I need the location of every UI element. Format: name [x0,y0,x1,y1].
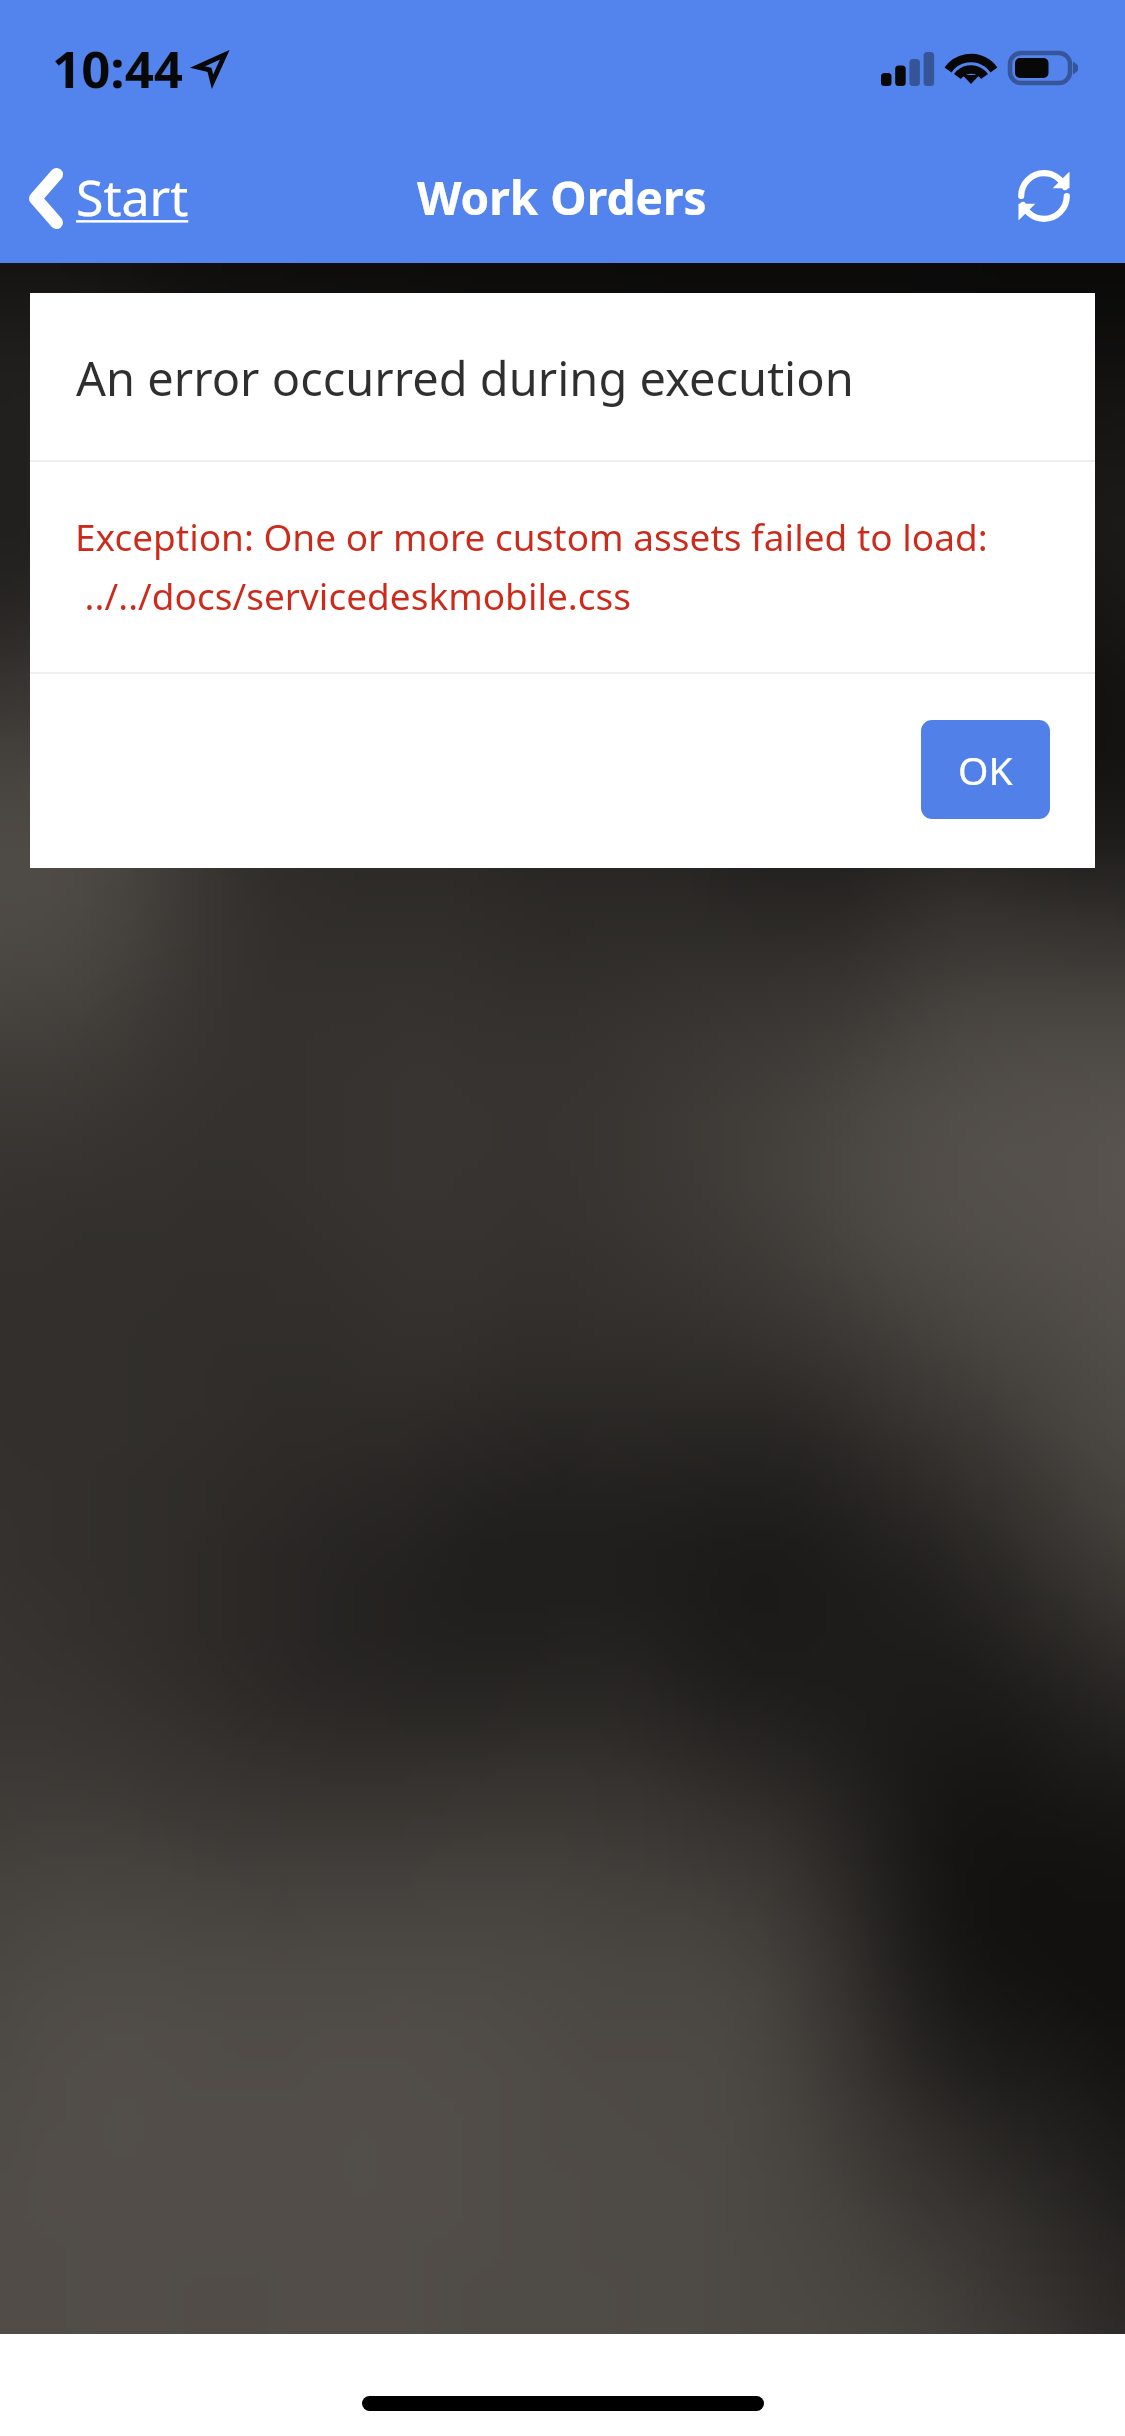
staticText: OK [958,743,1013,796]
button[interactable]: Start [20,154,210,240]
staticText: 10:44 [52,33,184,102]
staticText: Work Orders [417,166,707,229]
staticText: Start [76,163,189,231]
staticText: An error occurred during execution [76,346,854,410]
staticText: Exception: One or more custom assets fai… [75,511,988,621]
button[interactable]: Refresh [1000,152,1088,240]
button[interactable]: OK [921,720,1050,819]
